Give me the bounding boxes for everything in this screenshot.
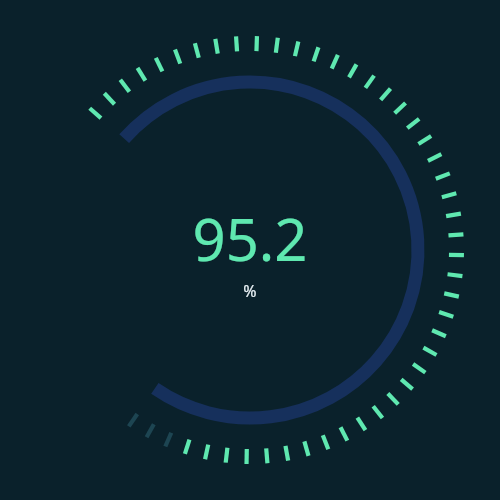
button[interactable]: Progress gauge 95.2 percent — [0, 0, 500, 500]
staticText: 95.2 — [192, 199, 308, 278]
staticText: % — [243, 280, 257, 302]
